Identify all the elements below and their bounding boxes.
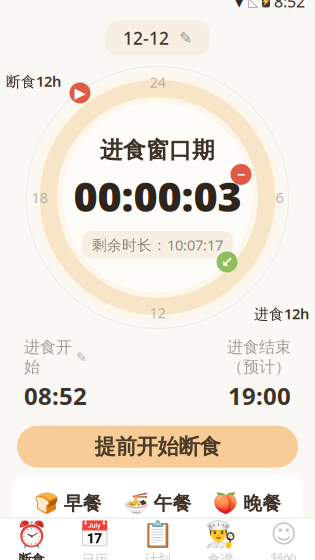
- staticText: 早餐: [64, 492, 102, 515]
- staticText: 晚餐: [243, 492, 281, 515]
- staticText: ⏰: [15, 519, 47, 548]
- staticText: 食谱: [207, 551, 233, 560]
- staticText: 24: [149, 72, 165, 92]
- button[interactable]: 🍞: [34, 492, 102, 515]
- button[interactable]: 断食开始: [69, 82, 90, 103]
- staticText: 断食: [18, 551, 44, 560]
- staticText: 18: [31, 188, 47, 207]
- staticText: 12-12: [123, 26, 169, 49]
- staticText: ◺: [248, 0, 258, 9]
- staticText: 🍑: [213, 492, 238, 515]
- staticText: ✎: [179, 29, 192, 47]
- button[interactable]: 进食开始: [216, 251, 237, 272]
- staticText: 午餐: [153, 492, 191, 515]
- button[interactable]: ☺: [252, 513, 315, 560]
- staticText: 📋: [141, 519, 173, 548]
- staticText: 提前开始断食: [94, 433, 220, 460]
- staticText: 👨‍🍳: [204, 519, 236, 548]
- button[interactable]: 🍑: [213, 492, 281, 515]
- button[interactable]: 👨‍🍳: [189, 513, 252, 560]
- staticText: 断食12h: [6, 71, 61, 91]
- staticText: 计划: [144, 551, 170, 560]
- staticText: 08:52: [24, 380, 87, 412]
- staticText: ↙: [221, 254, 233, 270]
- button[interactable]: ⏰: [0, 513, 63, 560]
- staticText: 8:52: [274, 0, 305, 12]
- staticText: 🍞: [34, 492, 59, 515]
- button[interactable]: 📅: [63, 513, 126, 560]
- staticText: ▶: [74, 85, 85, 101]
- button[interactable]: 提前开始断食: [17, 426, 298, 468]
- staticText: 📅: [78, 519, 110, 548]
- staticText: 日历: [81, 551, 107, 560]
- staticText: 进食窗口期: [100, 136, 215, 164]
- staticText: 00:00:03: [73, 168, 241, 223]
- staticText: ✎: [76, 349, 87, 365]
- staticText: 进食结束（预计）: [227, 337, 291, 377]
- button[interactable]: 🍜: [123, 492, 191, 515]
- staticText: 剩余时长：10:07:17: [92, 235, 223, 254]
- staticText: ☺: [270, 519, 296, 548]
- staticText: 进食12h: [254, 304, 309, 323]
- staticText: 进食开始: [24, 337, 72, 377]
- button[interactable]: 减少: [230, 164, 251, 185]
- staticText: ⚡: [261, 0, 271, 6]
- staticText: 我的: [270, 551, 296, 560]
- staticText: 19:00: [228, 380, 291, 412]
- button[interactable]: 📋: [126, 513, 189, 560]
- staticText: －: [233, 165, 248, 183]
- staticText: 6: [275, 188, 283, 207]
- staticText: ▼: [234, 0, 244, 9]
- button[interactable]: 12-12: [105, 20, 210, 55]
- staticText: 12: [149, 303, 165, 322]
- staticText: 🍜: [123, 492, 148, 515]
